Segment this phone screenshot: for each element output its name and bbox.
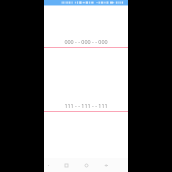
button[interactable]: Recent apps bbox=[62, 161, 71, 170]
button[interactable]: Back bbox=[102, 161, 111, 170]
button[interactable]: Hide keyboard bbox=[46, 163, 50, 167]
button[interactable]: 111 - - 111 - - 111 bbox=[44, 102, 128, 109]
button[interactable]: Home bbox=[82, 161, 91, 170]
button[interactable]: 000 - - 000 - - 000 bbox=[44, 38, 128, 45]
